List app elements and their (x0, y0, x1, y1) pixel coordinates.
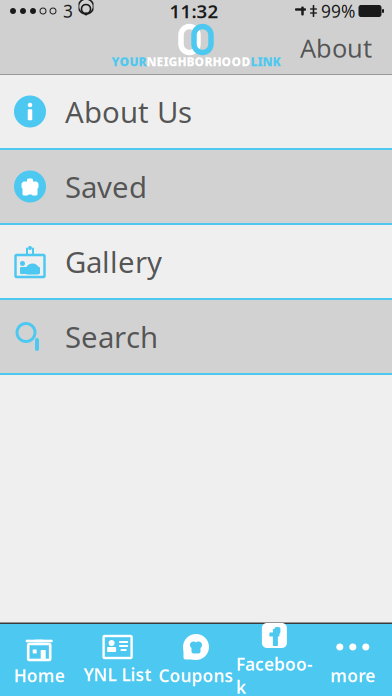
button[interactable]: About Us (0, 75, 392, 150)
button[interactable]: Search (0, 300, 392, 375)
button[interactable]: YNL List (78, 624, 157, 696)
staticText: 11:32 (169, 0, 218, 23)
button[interactable]: Coupons (157, 624, 235, 696)
button[interactable]: Home (0, 624, 78, 696)
staticText: Search (65, 317, 158, 356)
staticText: 3 (63, 0, 73, 22)
staticText: About (300, 31, 372, 65)
button[interactable]: Saved (0, 150, 392, 225)
staticText: NEIGHBORHOOD (146, 53, 250, 69)
staticText: YNL List (84, 663, 152, 686)
staticText: Gallery (65, 242, 162, 281)
staticText: YOUR (111, 53, 146, 69)
staticText: About Us (65, 92, 192, 131)
staticText: LINK (250, 53, 280, 69)
staticText: more (330, 664, 375, 687)
staticText: 99% (321, 0, 355, 22)
button[interactable]: Gallery (0, 225, 392, 300)
button[interactable]: About (286, 21, 386, 75)
button[interactable]: Facebook (235, 624, 314, 696)
staticText: Facebook (236, 652, 313, 696)
staticText: Coupons (158, 664, 233, 687)
staticText: Saved (65, 167, 147, 206)
button[interactable]: more (314, 624, 392, 696)
staticText: Home (14, 664, 65, 687)
